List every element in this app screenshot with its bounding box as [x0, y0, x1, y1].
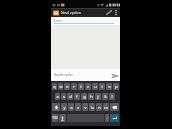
staticText: a [56, 94, 59, 99]
button[interactable]: . [105, 114, 109, 122]
staticText: z [87, 84, 89, 89]
button[interactable]: Backspace [110, 103, 119, 111]
staticText: x [70, 105, 73, 110]
staticText: j [97, 94, 99, 99]
button[interactable]: g [81, 93, 87, 100]
button[interactable]: u [92, 83, 98, 90]
button[interactable]: h [88, 93, 94, 100]
button[interactable]: k [102, 93, 108, 100]
staticText: e [66, 84, 69, 89]
button[interactable]: f [74, 93, 80, 100]
staticText: t [80, 84, 82, 89]
button[interactable]: x [68, 103, 74, 111]
staticText: Komu [54, 19, 62, 23]
staticText: m [104, 105, 108, 110]
button[interactable]: p [113, 83, 119, 90]
button[interactable]: Send [110, 71, 119, 80]
button[interactable]: c [75, 103, 81, 111]
button[interactable]: s [61, 93, 66, 100]
staticText: l [111, 94, 113, 99]
staticText: r [73, 84, 75, 89]
button[interactable]: i [99, 83, 105, 90]
staticText: h [90, 94, 93, 99]
button[interactable]: w [58, 83, 63, 90]
button[interactable]: Attach [105, 8, 113, 17]
button[interactable]: e [64, 83, 70, 90]
staticText: c [77, 105, 79, 110]
staticText: o [108, 84, 111, 89]
button[interactable]: Enter [110, 114, 119, 122]
button[interactable]: More options [113, 8, 119, 17]
button[interactable]: o [106, 83, 112, 90]
button[interactable]: d [67, 93, 73, 100]
button[interactable]: n [96, 103, 102, 111]
button[interactable]: b [89, 103, 95, 111]
staticText: f [76, 94, 78, 99]
button[interactable]: y [61, 103, 67, 111]
button[interactable]: j [95, 93, 101, 100]
staticText: d [69, 94, 72, 99]
button[interactable]: m [103, 103, 109, 111]
button[interactable]: z [85, 83, 91, 90]
button[interactable]: Shift [52, 103, 60, 111]
staticText: u [94, 84, 97, 89]
staticText: ?123 [52, 116, 58, 120]
button[interactable]: ?123 [52, 114, 58, 122]
staticText: w [59, 84, 63, 89]
staticText: g [83, 94, 86, 99]
staticText: Napište zprávu [54, 73, 73, 77]
staticText: s [63, 94, 65, 99]
button[interactable]: Napište zprávu [54, 69, 108, 81]
staticText: q [53, 84, 56, 89]
staticText: i [101, 84, 103, 89]
staticText: . [107, 116, 108, 120]
staticText: b [91, 105, 94, 110]
button[interactable]: r [71, 83, 77, 90]
staticText: Nová zpráva [61, 10, 81, 15]
button[interactable]: a [55, 93, 60, 100]
staticText: y [63, 105, 66, 110]
staticText: p [115, 84, 118, 89]
staticText: k [104, 94, 107, 99]
button[interactable]: v [82, 103, 88, 111]
button[interactable]: q [52, 83, 57, 90]
button[interactable]: l [109, 93, 115, 100]
staticText: v [84, 105, 87, 110]
staticText: n [98, 105, 101, 110]
button[interactable]: Voice input [59, 114, 66, 122]
button[interactable]: t [78, 83, 84, 90]
button[interactable]: Messaging [53, 10, 59, 16]
